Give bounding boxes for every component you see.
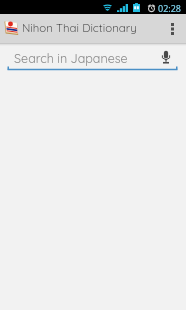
staticText: Search in Japanese <box>14 50 128 66</box>
staticText: Nihon Thai Dictionary <box>22 20 137 34</box>
button[interactable]: More options <box>164 14 180 43</box>
button[interactable] <box>4 46 182 74</box>
staticText: 02:28 <box>158 2 182 14</box>
button[interactable]: Voice search <box>155 46 177 70</box>
